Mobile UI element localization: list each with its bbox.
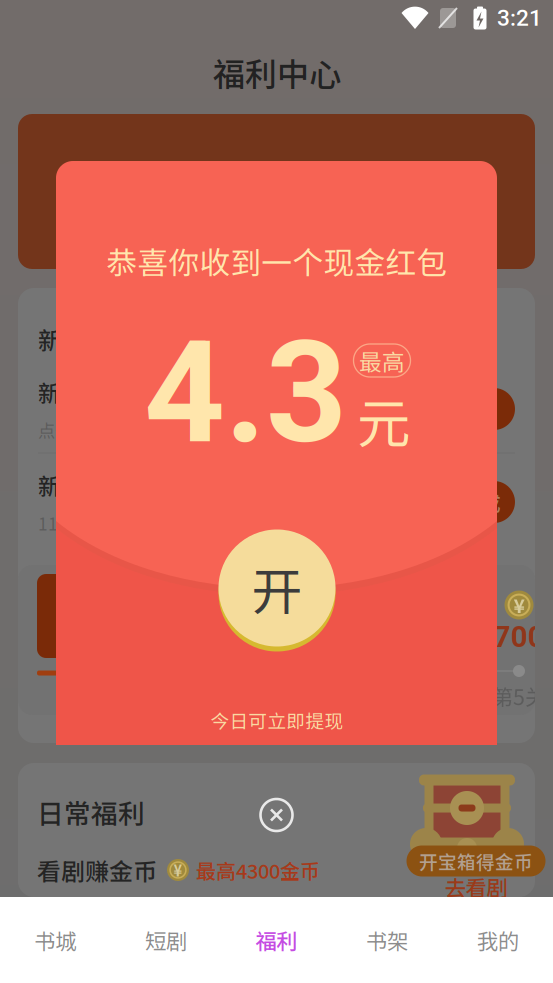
button[interactable]: 开红包 [217, 529, 337, 655]
staticText: 开宝箱得金币 [419, 847, 533, 874]
staticText: 最高 [359, 344, 405, 377]
staticText: 看剧赚金币 [37, 853, 157, 887]
staticText: 300 [280, 620, 331, 654]
button[interactable]: 我的 [442, 897, 553, 983]
staticText: 书城 [34, 925, 76, 955]
staticText: 新人首看得金币 [38, 375, 199, 408]
button[interactable]: 开宝箱得金币 [410, 762, 542, 904]
staticText: 福利 [255, 925, 297, 955]
button[interactable]: 新人首看得金币 [38, 378, 515, 440]
staticText: 新人连续看3天 [38, 468, 189, 501]
button[interactable]: 福利 [221, 897, 332, 983]
button[interactable]: 新人连续看3天 [38, 471, 515, 533]
staticText: ¥ [513, 591, 524, 619]
staticText: 第5关 [492, 681, 546, 711]
button[interactable]: 书城 [0, 897, 111, 983]
staticText: 去完成 [441, 487, 501, 516]
staticText: 书架 [366, 925, 408, 955]
staticText: 福利中心 [213, 49, 341, 95]
staticText: 去看剧 [444, 872, 507, 902]
staticText: 新人专享 [38, 322, 134, 356]
staticText: 700 [493, 620, 544, 654]
staticText: 短剧 [145, 925, 187, 955]
staticText: 11:59:59后失效 [38, 510, 159, 535]
staticText: 4.3 [144, 310, 347, 476]
button[interactable]: 短剧 [111, 897, 221, 983]
button[interactable]: 书架 [332, 897, 442, 983]
staticText: ¥ [173, 859, 182, 881]
staticText: 恭喜你收到一个现金红包 [106, 239, 447, 283]
staticText: 点击即可领取奖励 [38, 417, 174, 442]
staticText: 今日可立即提现 [210, 706, 343, 733]
staticText: 开 [251, 551, 302, 625]
staticText: 最高4300金币 [196, 855, 320, 884]
staticText: 我的 [477, 925, 519, 955]
button[interactable]: 关闭 [254, 793, 298, 837]
staticText: 3:21 [497, 5, 542, 31]
staticText: 日常福利 [37, 793, 145, 831]
staticText: 元 [357, 381, 410, 459]
